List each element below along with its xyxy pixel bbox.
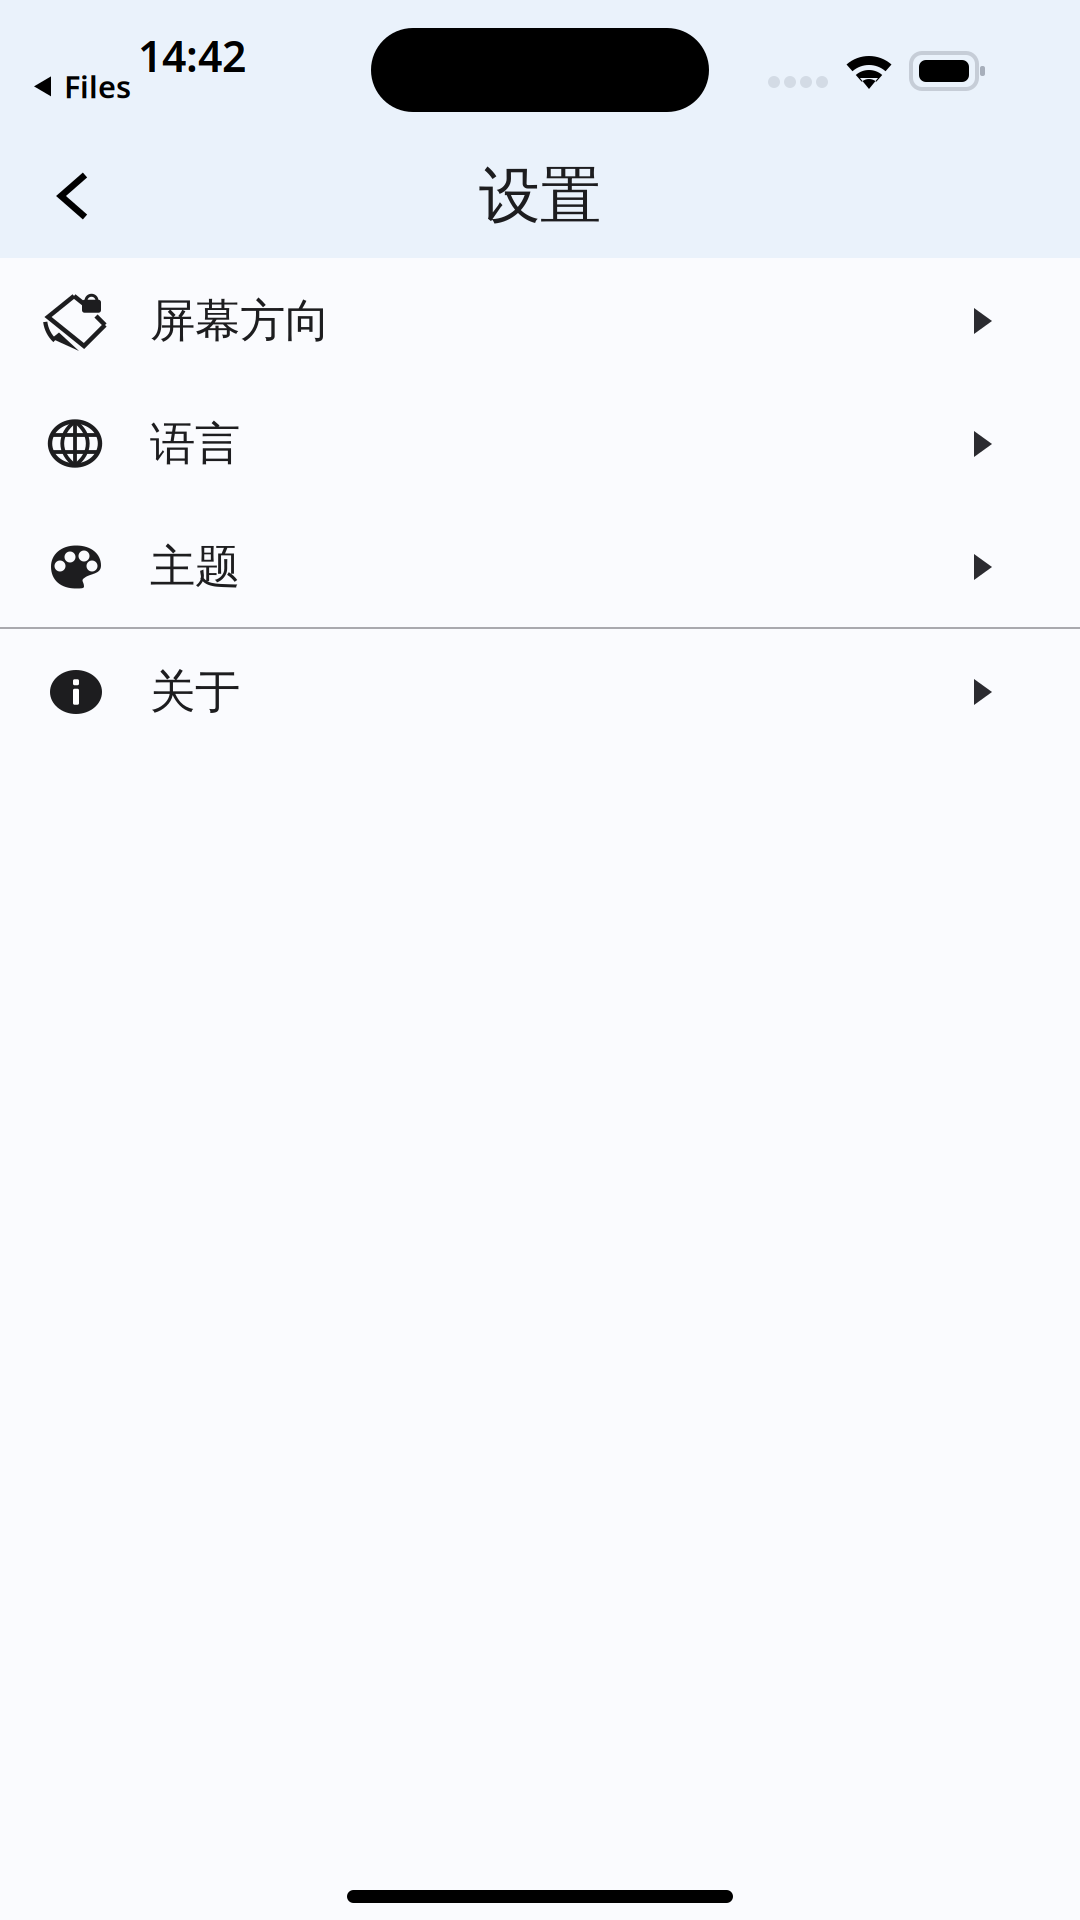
button[interactable]: 语言 — [0, 381, 1080, 504]
button[interactable]: 屏幕方向 — [0, 258, 1080, 381]
button[interactable]: 关于 — [0, 629, 1080, 752]
staticText: 主题 — [150, 539, 240, 595]
staticText: 14:42 — [138, 27, 246, 84]
staticText: 屏幕方向 — [150, 293, 330, 349]
staticText: 语言 — [150, 416, 240, 472]
staticText: 关于 — [150, 664, 240, 720]
staticText: 设置 — [479, 158, 601, 234]
button[interactable]: 主题 — [0, 504, 1080, 627]
button[interactable]: Back — [0, 140, 120, 252]
staticText: Files — [64, 66, 131, 107]
